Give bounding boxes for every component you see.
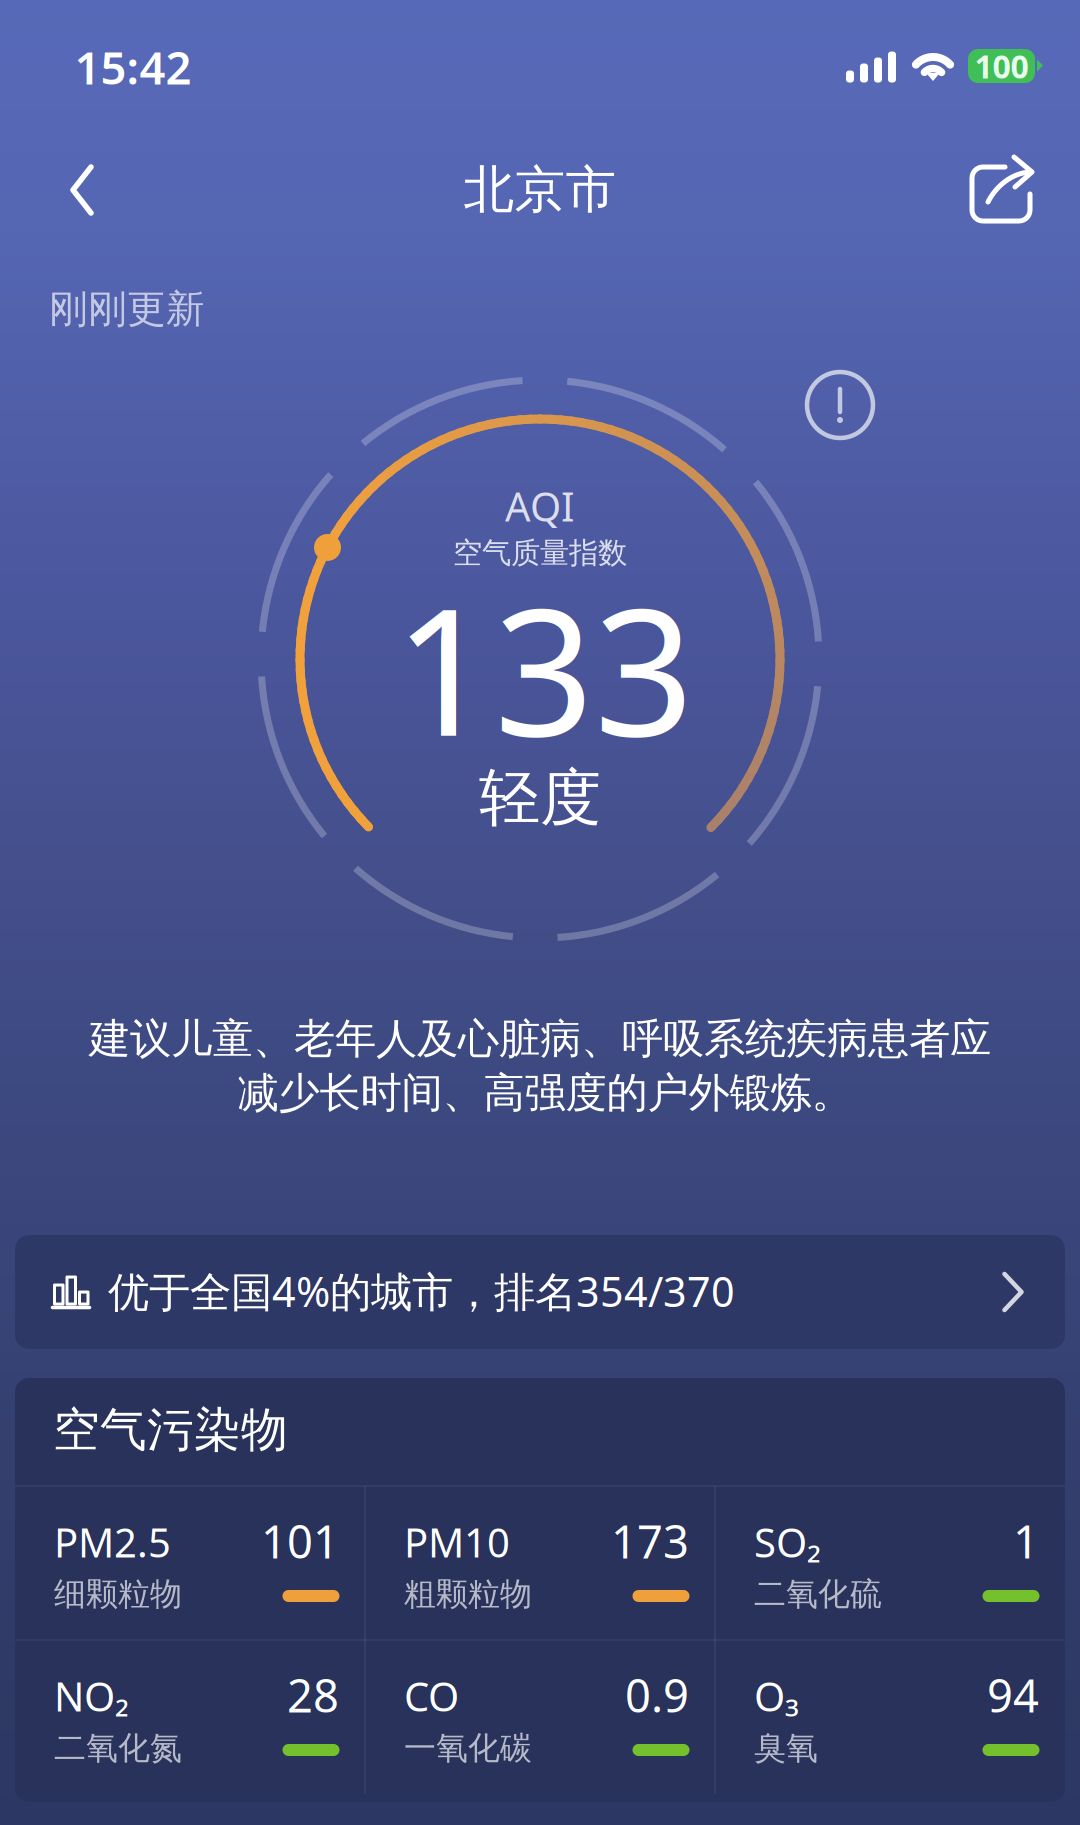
button[interactable]: Back xyxy=(27,135,137,245)
button[interactable]: 优于全国4%的城市，排名354/370 xyxy=(15,1235,1065,1349)
staticText: AQI xyxy=(505,479,575,532)
staticText: 二氧化硫 xyxy=(754,1574,882,1614)
staticText: 优于全国4%的城市，排名354/370 xyxy=(108,1264,735,1318)
staticText: 101 xyxy=(261,1511,339,1571)
staticText: O₃ xyxy=(754,1669,799,1722)
staticText: 100 xyxy=(974,45,1028,87)
staticText: 二氧化氮 xyxy=(54,1728,182,1768)
staticText: 一氧化碳 xyxy=(404,1728,532,1768)
staticText: 28 xyxy=(287,1665,339,1725)
staticText: CO xyxy=(404,1669,459,1722)
staticText: 94 xyxy=(987,1665,1039,1725)
staticText: 臭氧 xyxy=(754,1728,818,1768)
staticText: 建议儿童、老年人及心脏病、呼吸系统疾病患者应 xyxy=(89,1014,991,1064)
staticText: PM2.5 xyxy=(54,1515,171,1568)
staticText: 北京市 xyxy=(463,159,616,221)
staticText: 0.9 xyxy=(625,1665,689,1725)
staticText: 1 xyxy=(1013,1511,1039,1571)
staticText: 轻度 xyxy=(479,760,601,836)
staticText: 15:42 xyxy=(74,37,191,97)
staticText: PM10 xyxy=(404,1515,510,1568)
staticText: 刚刚更新 xyxy=(49,285,205,333)
staticText: 133 xyxy=(394,552,694,784)
button[interactable]: Share xyxy=(945,134,1057,246)
button[interactable]: Air quality information xyxy=(795,360,885,450)
staticText: NO₂ xyxy=(54,1669,129,1722)
staticText: 空气污染物 xyxy=(53,1401,288,1459)
staticText: 细颗粒物 xyxy=(54,1574,182,1614)
staticText: 粗颗粒物 xyxy=(404,1574,532,1614)
staticText: 减少长时间、高强度的户外锻炼。 xyxy=(237,1068,852,1118)
staticText: 173 xyxy=(611,1511,689,1571)
staticText: SO₂ xyxy=(754,1515,821,1568)
staticText: 空气质量指数 xyxy=(453,535,627,571)
